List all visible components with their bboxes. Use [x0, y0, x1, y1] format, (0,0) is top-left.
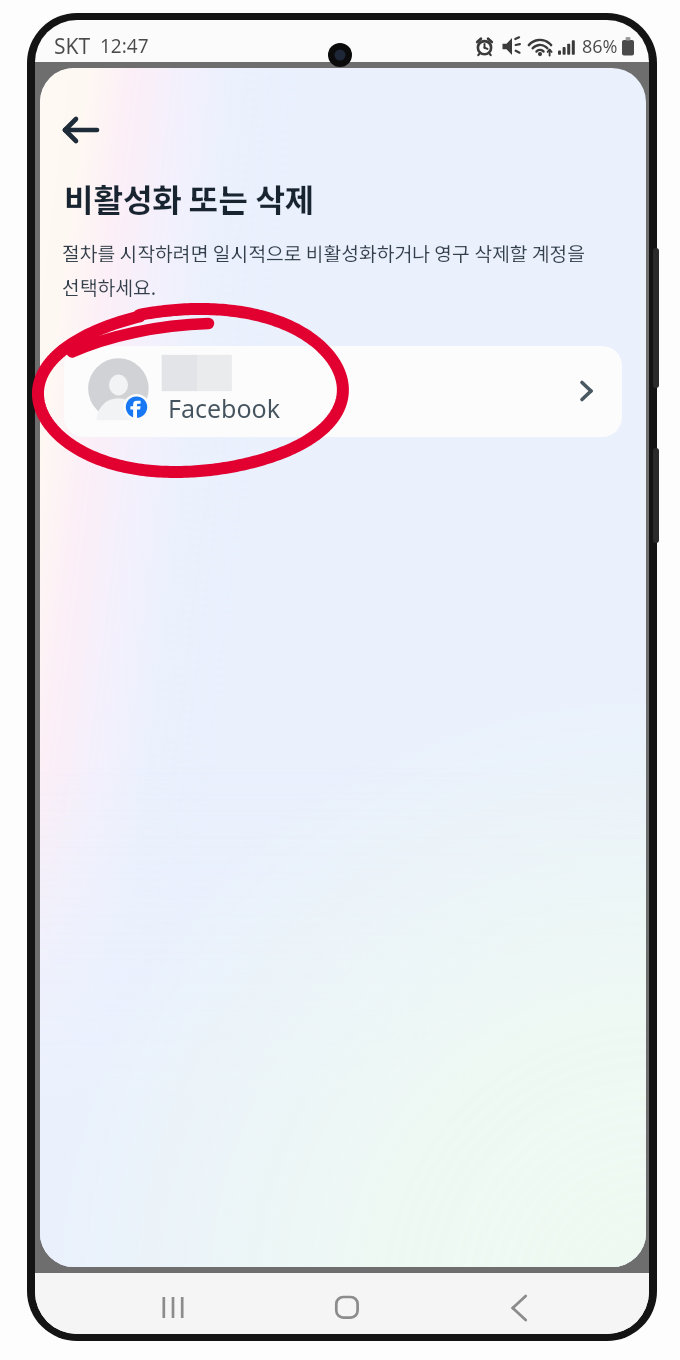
button[interactable]: Home: [306, 1281, 386, 1333]
staticText: 12:47: [100, 33, 149, 59]
button[interactable]: Recent apps: [133, 1281, 213, 1333]
button[interactable]: Back: [46, 98, 116, 160]
staticText: 절차를 시작하려면 일시적으로 비활성화하거나 영구 삭제할 계정을 선택하세요…: [62, 239, 586, 301]
button[interactable]: Facebook: [64, 346, 622, 437]
staticText: SKT: [54, 32, 91, 61]
button[interactable]: Back: [480, 1281, 560, 1333]
staticText: Facebook: [168, 391, 281, 425]
staticText: 비활성화 또는 삭제: [64, 175, 315, 221]
staticText: 86%: [582, 34, 618, 59]
